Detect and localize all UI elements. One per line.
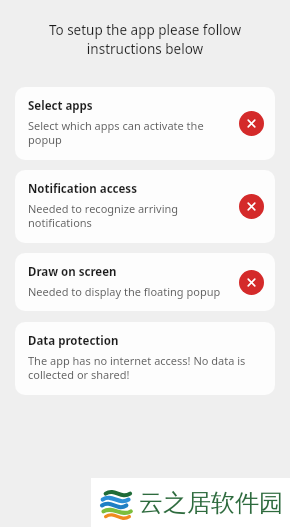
staticText: To setup the app please follow instructi…	[14, 21, 276, 57]
staticText: Select which apps can activate the popup	[28, 118, 204, 148]
staticText: Notification access	[28, 181, 137, 197]
button[interactable]: Permission not granted, tap to grant	[239, 111, 264, 136]
staticText: Needed to recognize arriving notificatio…	[28, 201, 179, 231]
staticText: Data protection	[28, 333, 119, 349]
staticText: The app has no internet access! No data …	[28, 353, 246, 383]
button[interactable]: Permission not granted, tap to grant	[239, 194, 264, 219]
button[interactable]: Data protection	[15, 322, 275, 395]
staticText: Select apps	[28, 98, 93, 114]
button[interactable]: Draw on screen	[15, 253, 275, 311]
staticText: Draw on screen	[28, 264, 117, 280]
staticText: Needed to display the floating popup	[28, 284, 221, 299]
button[interactable]: Notification access	[15, 170, 275, 243]
staticText: 云之居软件园	[139, 488, 283, 518]
button[interactable]: Permission not granted, tap to grant	[239, 270, 264, 295]
button[interactable]: Select apps	[15, 87, 275, 160]
